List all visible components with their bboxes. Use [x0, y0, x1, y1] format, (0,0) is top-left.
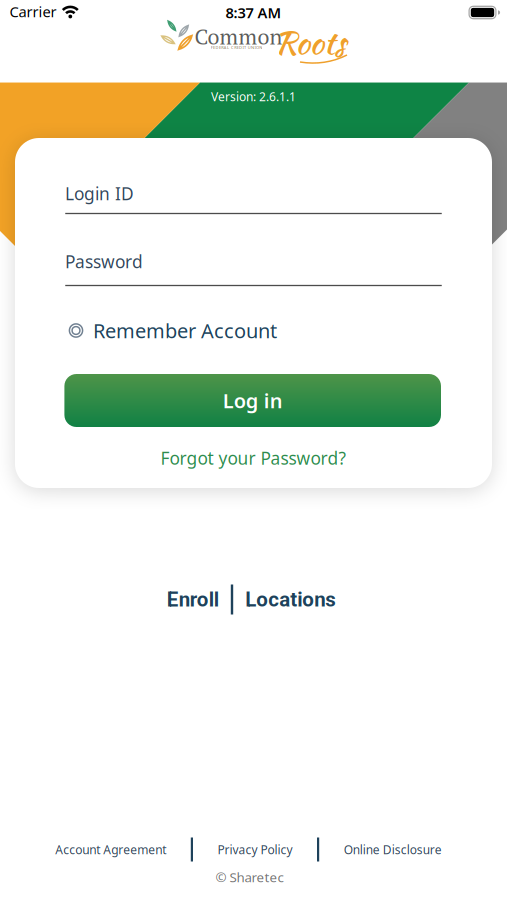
staticText: 8:37 AM [225, 3, 281, 22]
button[interactable]: Log in [64, 374, 441, 427]
staticText: Enroll [167, 587, 219, 611]
button[interactable]: Enroll [167, 587, 219, 611]
staticText: Locations [245, 587, 336, 611]
button[interactable]: Online Disclosure [344, 841, 442, 857]
staticText: Login ID [65, 182, 134, 205]
button[interactable]: Locations [245, 587, 336, 611]
staticText: Roots [274, 19, 345, 66]
staticText: Common [194, 22, 282, 51]
staticText: Account Agreement [55, 841, 166, 857]
staticText: Log in [223, 387, 283, 414]
staticText: © Sharetec [215, 868, 283, 886]
staticText: Version: 2.6.1.1 [211, 88, 296, 104]
staticText: Forgot your Password? [160, 446, 346, 469]
button[interactable]: Privacy Policy [217, 841, 292, 857]
staticText: Privacy Policy [217, 841, 292, 857]
button[interactable]: Password text field [65, 253, 442, 286]
staticText: Password [65, 250, 143, 273]
button[interactable]: Forgot your Password? [160, 446, 346, 469]
button[interactable]: Login ID text field [65, 181, 442, 214]
button[interactable]: Account Agreement [55, 841, 166, 857]
staticText: Carrier [9, 2, 56, 21]
staticText: Remember Account [93, 317, 277, 344]
staticText: Online Disclosure [344, 841, 442, 857]
button[interactable]: Remember Account [65, 317, 442, 344]
staticText: FEDERAL CREDIT UNION [211, 45, 262, 50]
